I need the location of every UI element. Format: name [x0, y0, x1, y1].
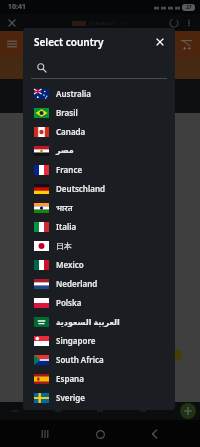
button[interactable]: Recents — [35, 424, 55, 444]
staticText: Canada — [56, 126, 86, 137]
staticText: Australia — [56, 88, 91, 99]
button[interactable]: Tool 1 — [51, 404, 65, 418]
button[interactable]: Canada — [23, 122, 175, 141]
button[interactable]: Home — [90, 424, 110, 444]
button[interactable]: Italia — [23, 217, 175, 236]
button[interactable]: Reload — [168, 17, 180, 29]
button[interactable]: Deutschland — [23, 179, 175, 198]
staticText: France — [56, 164, 83, 175]
button[interactable]: France — [23, 160, 175, 179]
button[interactable]: Espana — [23, 369, 175, 388]
button[interactable]: العربية السعودية — [23, 312, 175, 331]
staticText: South Africa — [56, 354, 104, 365]
button[interactable]: Brasil — [23, 103, 175, 122]
button[interactable]: भारत — [23, 198, 175, 217]
button[interactable]: Singapore — [23, 331, 175, 350]
button[interactable]: More options — [183, 17, 195, 29]
staticText: العربية السعودية — [56, 316, 120, 327]
staticText: Sverige — [56, 392, 85, 403]
button[interactable]: Nederland — [23, 274, 175, 293]
staticText: Italia — [56, 221, 77, 232]
staticText: Brasil — [56, 107, 78, 118]
button[interactable]: Tool 2 — [93, 404, 107, 418]
button[interactable]: Mexico — [23, 255, 175, 274]
button[interactable]: Polska — [23, 293, 175, 312]
staticText: 27 — [186, 4, 192, 11]
staticText: checkout — [89, 19, 115, 27]
button[interactable]: 日本 — [23, 236, 175, 255]
button[interactable]: Add — [180, 403, 196, 419]
staticText: 10:41 — [8, 2, 26, 12]
button[interactable] — [37, 56, 165, 78]
staticText: Select country — [34, 35, 104, 49]
button[interactable]: Close dialog — [153, 35, 167, 49]
button[interactable]: Tool 3 — [136, 404, 150, 418]
button[interactable]: Sverige — [23, 388, 175, 407]
button[interactable]: Close — [5, 16, 19, 30]
button[interactable]: Tool 4 — [178, 404, 192, 418]
button[interactable]: Tool 0 — [8, 404, 22, 418]
staticText: Singapore — [56, 335, 96, 346]
button[interactable]: Back — [145, 424, 165, 444]
button[interactable]: مصر — [23, 141, 175, 160]
staticText: भारत — [56, 202, 73, 213]
staticText: Polska — [56, 297, 82, 308]
button[interactable]: Australia — [23, 84, 175, 103]
staticText: مصر — [56, 146, 74, 155]
staticText: 日本 — [56, 241, 72, 251]
button[interactable]: South Africa — [23, 350, 175, 369]
staticText: Nederland — [56, 278, 98, 289]
staticText: Mexico — [56, 259, 84, 270]
staticText: Deutschland — [56, 183, 106, 194]
staticText: Espana — [56, 373, 84, 384]
